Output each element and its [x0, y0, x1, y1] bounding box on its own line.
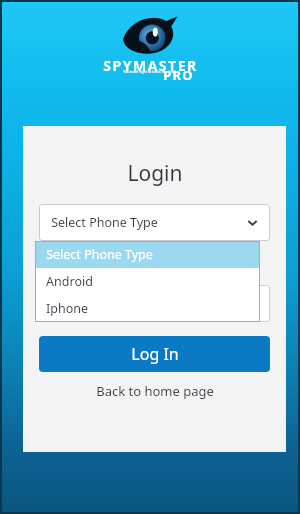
button[interactable]: Android	[35, 268, 260, 295]
other: Spymaster Pro logo	[122, 15, 178, 55]
button[interactable]: Back to home page	[23, 382, 286, 400]
other: Open phone type list	[247, 217, 258, 228]
staticText: Login	[127, 159, 183, 188]
button[interactable]: Log In	[39, 336, 270, 372]
staticText: You have right to know the truth	[123, 69, 177, 74]
button[interactable]: Select Phone Type	[35, 241, 260, 268]
staticText: Log In	[131, 343, 179, 365]
staticText: SPYMASTER	[103, 56, 198, 75]
button[interactable]: Iphone	[35, 295, 260, 322]
staticText: PRO	[163, 66, 194, 84]
button[interactable]: Password	[39, 285, 270, 322]
staticText: Iphone	[46, 300, 88, 317]
staticText: Android	[46, 273, 93, 290]
staticText: Select Phone Type	[46, 246, 153, 263]
staticText: Back to home page	[96, 382, 214, 400]
button[interactable]: Select Phone Type	[39, 204, 270, 241]
staticText: Password	[51, 295, 110, 313]
staticText: Select Phone Type	[51, 214, 158, 231]
